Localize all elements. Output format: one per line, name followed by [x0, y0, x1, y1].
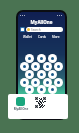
button[interactable]: Card — [54, 62, 63, 71]
button[interactable]: Card — [37, 70, 46, 79]
staticText: MyAllOne — [12, 107, 30, 111]
button[interactable]: Card — [20, 62, 29, 71]
button[interactable]: Card — [48, 54, 57, 63]
button[interactable]: Card — [20, 78, 29, 87]
staticText: MyAllOne — [18, 19, 65, 25]
button[interactable]: Card — [54, 78, 63, 87]
button[interactable]: Card — [25, 54, 34, 63]
staticText: Search — [31, 28, 41, 32]
button[interactable]: Card — [43, 78, 52, 87]
button[interactable]: Cards — [37, 35, 48, 39]
button[interactable]: More — [51, 35, 61, 39]
staticText: Wallet — [23, 35, 32, 39]
button[interactable]: Card — [31, 78, 40, 87]
button[interactable]: Card — [25, 85, 34, 94]
button[interactable]: Wallet — [22, 35, 33, 39]
button[interactable]: Card — [48, 85, 57, 94]
button[interactable]: Search — [26, 27, 63, 32]
button[interactable]: Card — [37, 85, 46, 94]
button[interactable]: Card — [31, 62, 40, 71]
staticText: More — [52, 35, 60, 39]
button[interactable]: Card — [48, 70, 57, 79]
button[interactable]: Card — [25, 70, 34, 79]
button[interactable]: Card — [37, 54, 46, 63]
button[interactable]: Card — [43, 62, 52, 71]
staticText: Cards — [38, 35, 47, 39]
button[interactable]: Scan — [20, 27, 25, 32]
